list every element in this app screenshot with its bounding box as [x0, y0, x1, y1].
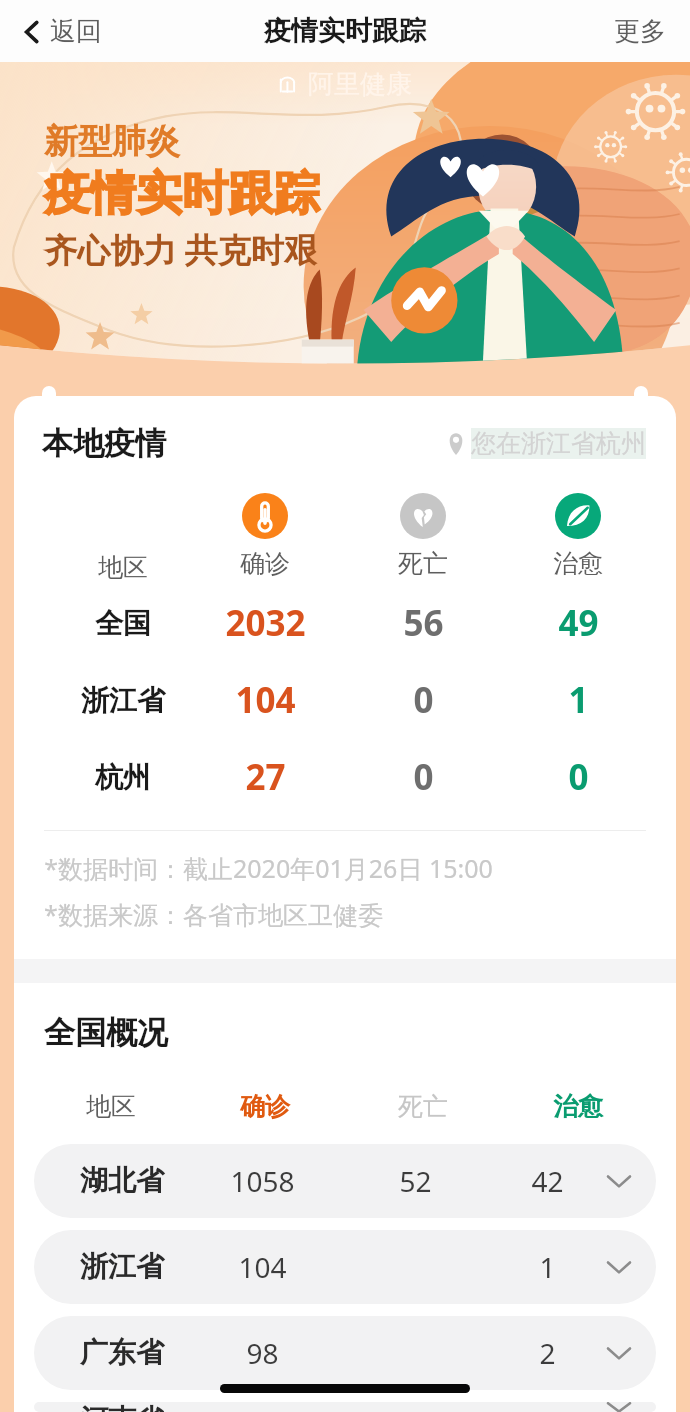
staticText: 广东省	[80, 1335, 164, 1370]
staticText: 浙江省	[81, 683, 165, 718]
staticText: 104	[235, 676, 296, 724]
button[interactable]: 湖北省	[34, 1144, 656, 1218]
staticText: 死亡	[398, 1091, 448, 1122]
staticText: 本地疫情	[42, 424, 166, 463]
button[interactable]: 浙江省	[34, 1230, 656, 1304]
staticText: 治愈	[553, 548, 603, 579]
staticText: 死亡	[398, 548, 448, 579]
staticText: 确诊	[240, 1091, 290, 1122]
staticText: 42	[531, 1162, 564, 1200]
staticText: 您在浙江省杭州	[471, 428, 646, 459]
staticText: *数据时间：截止2020年01月26日 15:00	[44, 851, 493, 885]
staticText: 疫情实时跟踪	[44, 165, 320, 223]
staticText: 返回	[50, 15, 102, 48]
staticText: 浙江省	[80, 1249, 164, 1284]
staticText: *数据来源：各省市地区卫健委	[44, 897, 383, 931]
staticText: 河南省	[80, 1402, 164, 1412]
staticText: 1	[539, 1248, 556, 1286]
staticText: 2	[539, 1334, 556, 1372]
button[interactable]: 浙江省	[14, 662, 676, 739]
other: Expand	[606, 1254, 632, 1280]
staticText: 治愈	[553, 1091, 603, 1122]
staticText: 27	[245, 753, 286, 801]
staticText: 新型肺炎	[44, 120, 180, 163]
button[interactable]: 更多	[608, 9, 672, 54]
staticText: 全国	[95, 606, 151, 641]
button[interactable]: 全国	[14, 585, 676, 662]
button[interactable]: Location	[445, 426, 648, 461]
button[interactable]: 杭州	[14, 739, 676, 816]
staticText: 齐心协力 共克时艰	[44, 227, 317, 272]
staticText: 49	[558, 599, 599, 647]
staticText: 98	[246, 1334, 279, 1372]
staticText: 1058	[230, 1162, 295, 1200]
other: Expand	[606, 1168, 632, 1194]
staticText: 更多	[614, 15, 666, 48]
staticText: 确诊	[240, 548, 290, 579]
button[interactable]: 广东省	[34, 1316, 656, 1390]
staticText: 1	[568, 676, 589, 724]
staticText: 2032	[225, 599, 306, 647]
staticText: 全国概况	[44, 1013, 168, 1052]
staticText: 104	[238, 1248, 287, 1286]
button[interactable]: 返回	[20, 9, 106, 54]
staticText: 杭州	[95, 760, 151, 795]
staticText: 0	[568, 753, 589, 801]
staticText: 0	[413, 676, 434, 724]
staticText: 52	[399, 1162, 432, 1200]
staticText: 地区	[98, 552, 148, 583]
other: Location	[447, 432, 465, 455]
other: Expand	[606, 1340, 632, 1366]
button[interactable]: 河南省	[34, 1402, 656, 1412]
staticText: 阿里健康	[308, 68, 412, 101]
staticText: 地区	[86, 1091, 136, 1122]
other: Expand	[606, 1402, 632, 1412]
staticText: 56	[403, 599, 444, 647]
staticText: 湖北省	[80, 1163, 164, 1198]
staticText: 疫情实时跟踪	[264, 14, 426, 48]
staticText: 0	[413, 753, 434, 801]
